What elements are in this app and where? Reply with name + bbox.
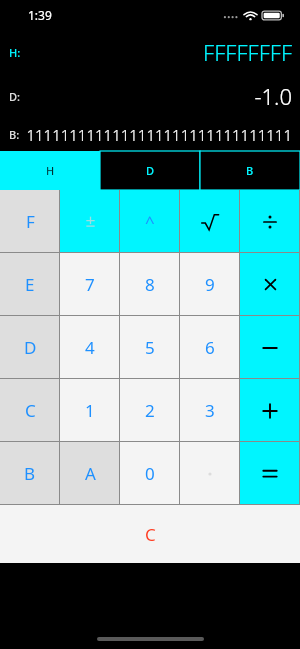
button[interactable]: 1 [60,379,120,442]
button[interactable]: 3 [180,379,240,442]
staticText: H [46,163,55,178]
button[interactable]: 4 [60,316,120,379]
button[interactable]: F [0,190,60,253]
button[interactable]: Subtract [240,316,300,379]
button[interactable]: 7 [60,253,120,316]
button[interactable]: C [0,379,60,442]
staticText: 0 [145,462,155,485]
button[interactable]: Square root [180,190,240,253]
staticText: F [26,210,35,233]
staticText: E [25,273,35,296]
staticText: B [246,163,254,178]
staticText: FFFFFFFF [203,37,292,67]
staticText: 3 [205,399,215,422]
staticText: 9 [205,273,215,296]
staticText: 1:39 [28,7,52,23]
button[interactable]: D [0,316,60,379]
staticText: B [24,462,36,485]
button[interactable]: Multiply [240,253,300,316]
button[interactable]: Plus minus [60,190,120,253]
button[interactable]: Add [240,379,300,442]
button[interactable]: C [0,505,300,563]
button[interactable]: 0 [120,442,180,505]
button[interactable]: 9 [180,253,240,316]
button[interactable]: A [60,442,120,505]
button[interactable]: Divide [240,190,300,253]
button[interactable]: 8 [120,253,180,316]
button[interactable]: 5 [120,316,180,379]
staticText: 6 [205,336,215,359]
staticText: D [24,336,37,359]
button[interactable]: H [0,151,100,190]
staticText: D: [9,89,21,104]
staticText: C [25,399,36,422]
staticText: ^ [145,210,155,233]
button[interactable]: B [200,151,300,190]
staticText: 7 [85,273,95,296]
button[interactable]: ^ [120,190,180,253]
button[interactable]: Equals [240,442,300,505]
staticText: 1 [85,399,95,422]
staticText: -1.0 [254,81,292,111]
button[interactable]: D [100,151,200,190]
staticText: 2 [145,399,155,422]
staticText: C [145,523,156,546]
staticText: 5 [145,336,155,359]
staticText: A [85,462,96,485]
staticText: H: [9,45,21,60]
staticText: 11111111111111111111111111111111 [26,125,292,145]
staticText: B: [9,127,20,142]
staticText: D [146,163,155,178]
staticText: 8 [145,273,155,296]
button[interactable]: E [0,253,60,316]
staticText: 4 [85,336,95,359]
button[interactable]: B [0,442,60,505]
button[interactable]: 2 [120,379,180,442]
button[interactable]: 6 [180,316,240,379]
button[interactable]: Decimal point [180,442,240,505]
